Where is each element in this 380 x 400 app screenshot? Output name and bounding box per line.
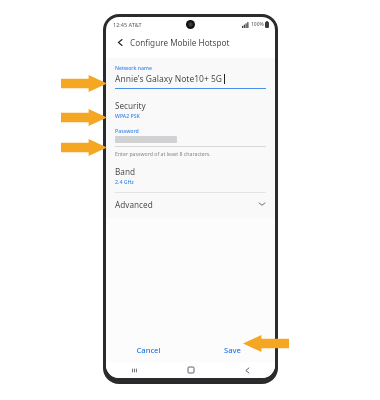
staticText: Band [115, 166, 136, 177]
button[interactable]: Save [190, 338, 275, 362]
staticText: WPA2 PSK [115, 112, 140, 119]
button[interactable]: Recent apps [106, 362, 163, 378]
button[interactable]: Back [114, 36, 126, 48]
staticText: Security [115, 100, 146, 111]
staticText: 100% [251, 21, 264, 28]
staticText: Advanced [115, 199, 153, 210]
button[interactable]: Password [106, 127, 275, 157]
button[interactable]: Back [219, 362, 275, 378]
button[interactable]: Home [163, 362, 219, 378]
staticText: Network name [115, 64, 152, 71]
staticText: Save [224, 345, 241, 355]
staticText: Password [115, 127, 139, 134]
staticText: Annie's Galaxy Note10+ 5G [115, 73, 223, 85]
staticText: Enter password of at least 8 characters. [115, 150, 211, 157]
button[interactable]: Security [106, 100, 275, 119]
staticText: 12:45 AT&T [113, 21, 142, 28]
staticText: Configure Mobile Hotspot [130, 37, 230, 48]
button[interactable]: Band [106, 166, 275, 185]
button[interactable]: Advanced [106, 193, 275, 215]
button[interactable]: Cancel [106, 338, 190, 362]
staticText: 2.4 GHz [115, 178, 134, 185]
button[interactable]: Network name [106, 64, 275, 89]
staticText: Cancel [136, 345, 161, 355]
